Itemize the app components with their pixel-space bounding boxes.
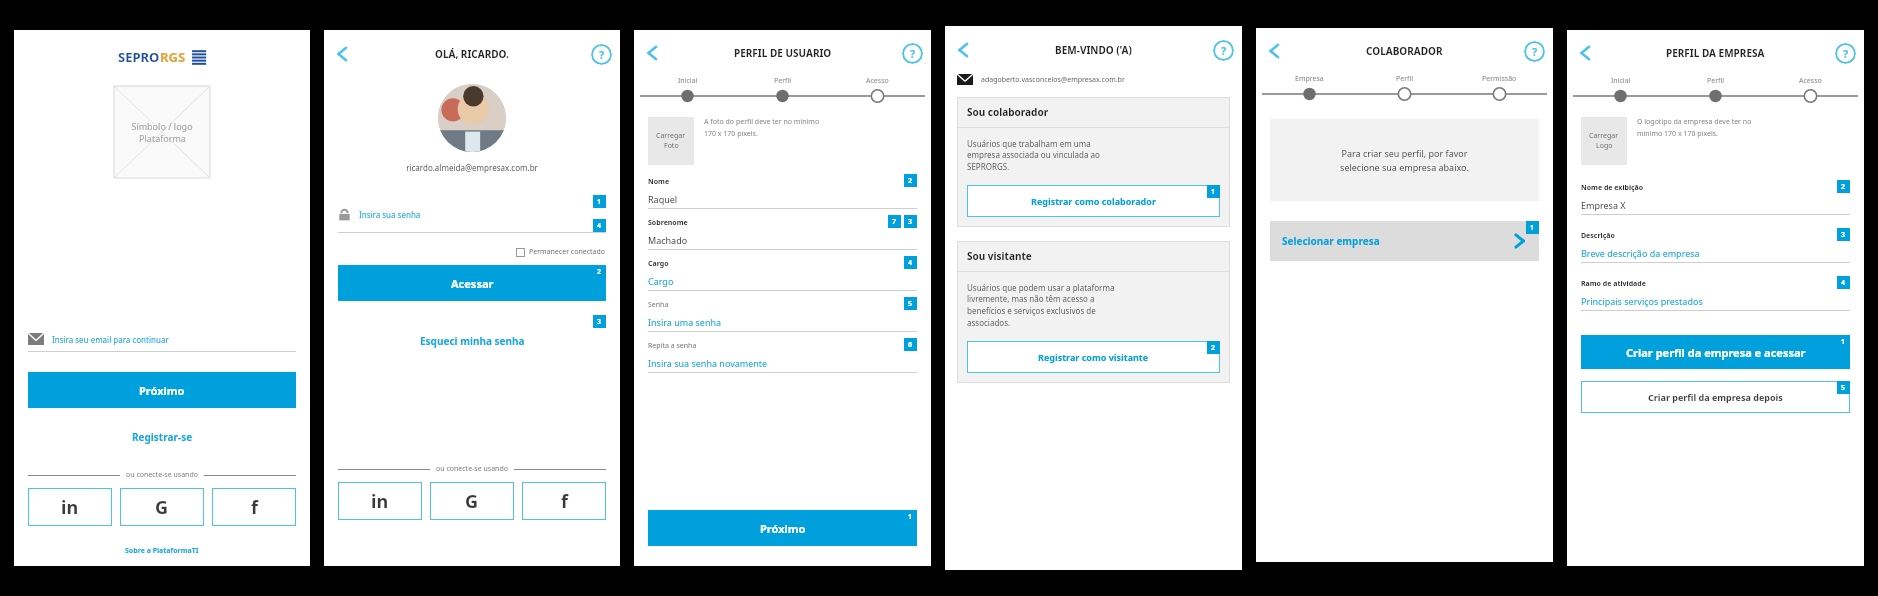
staticText: Cargo [648, 259, 669, 269]
staticText: Sou visitante [967, 249, 1032, 263]
staticText: Sou colaborador [967, 105, 1049, 119]
staticText: ou conecte-se usando [126, 470, 198, 480]
button[interactable]: Entrar com G [120, 488, 204, 526]
button[interactable]: Ajuda [591, 44, 612, 65]
staticText: Descrição [1581, 231, 1615, 241]
staticText: O logotipo da empresa deve ter no mínimo… [1637, 117, 1752, 138]
button[interactable]: Próximo [28, 372, 296, 408]
staticText: ? [910, 46, 916, 61]
staticText: 1 [1211, 187, 1216, 197]
staticText: Acessar [451, 276, 494, 291]
staticText: in [61, 495, 79, 520]
staticText: Plataforma [139, 132, 186, 144]
staticText: Perfil [1396, 74, 1414, 84]
staticText: ? [1532, 44, 1538, 59]
staticText: Inicial [678, 76, 698, 86]
staticText: ou conecte-se usando [436, 464, 508, 474]
staticText: Breve descrição da empresa [1581, 247, 1700, 259]
staticText: Criar perfil da empresa e acessar [1626, 345, 1806, 360]
staticText: ? [599, 47, 605, 62]
staticText: Próximo [760, 521, 806, 536]
staticText: Carregar [1589, 131, 1619, 141]
button[interactable]: Registrar-se [28, 430, 296, 444]
button[interactable]: Carregar [648, 117, 694, 165]
staticText: Inicial [1611, 76, 1631, 86]
staticText: Selecionar empresa [1282, 234, 1380, 248]
staticText: Usuários que trabalham em uma empresa as… [967, 138, 1100, 173]
staticText: Carregar [656, 131, 686, 141]
staticText: 3 [1841, 230, 1846, 240]
button[interactable]: Próximo [648, 510, 917, 546]
button[interactable]: Entrar com G [430, 482, 514, 520]
button[interactable]: Voltar [953, 39, 975, 61]
button[interactable]: Registrar como visitante [967, 341, 1220, 373]
staticText: Esqueci minha senha [420, 334, 525, 348]
button[interactable]: Voltar [1264, 40, 1286, 62]
button[interactable]: Criar perfil da empresa depois [1581, 381, 1850, 413]
button[interactable]: Entrar com f [522, 482, 606, 520]
staticText: G [465, 489, 479, 514]
staticText: RGS [160, 48, 186, 66]
staticText: PERFIL DA EMPRESA [1666, 46, 1765, 60]
staticText: Insira seu email para continuar [52, 334, 169, 345]
staticText: 7 [892, 217, 897, 227]
staticText: Principais serviços prestados [1581, 295, 1703, 307]
button[interactable]: Entrar com in [28, 488, 112, 526]
staticText: Logo [1596, 141, 1613, 151]
staticText: Sobre a PlataformaTI [125, 546, 199, 556]
staticText: Machado [648, 234, 688, 246]
staticText: SEPRO [118, 48, 160, 66]
button[interactable]: Acessar [338, 265, 606, 301]
button[interactable]: Voltar [1575, 42, 1597, 64]
staticText: 1 [1530, 223, 1535, 233]
staticText: Permanecer conectado [529, 247, 606, 257]
button[interactable]: Entrar com f [212, 488, 296, 526]
staticText: in [371, 489, 389, 514]
staticText: 1 [1841, 337, 1846, 347]
staticText: Usuários que podem usar a plataforma liv… [967, 282, 1115, 329]
staticText: Para criar seu perfil, por favor selecio… [1340, 147, 1469, 174]
button[interactable]: Ajuda [1213, 40, 1234, 61]
staticText: Próximo [139, 383, 185, 398]
staticText: 2 [1841, 182, 1846, 192]
button[interactable]: Entrar com in [338, 482, 422, 520]
button[interactable]: Registrar como colaborador [967, 185, 1220, 217]
staticText: 2 [1211, 343, 1216, 353]
staticText: 3 [597, 317, 602, 327]
button[interactable]: Selecionar empresa [1270, 221, 1539, 261]
staticText: Sobrenome [648, 218, 688, 228]
staticText: ? [1221, 43, 1227, 58]
staticText: 5 [908, 299, 913, 309]
staticText: Perfil [1707, 76, 1725, 86]
staticText: Foto [664, 141, 679, 151]
button[interactable]: Ajuda [902, 43, 923, 64]
button[interactable]: Voltar [332, 43, 354, 65]
staticText: Insira uma senha [648, 316, 722, 328]
staticText: Raquel [648, 193, 678, 205]
staticText: 4 [597, 221, 602, 231]
staticText: 5 [1841, 383, 1846, 393]
staticText: 2 [597, 267, 602, 277]
button[interactable]: Criar perfil da empresa e acessar [1581, 335, 1850, 369]
button[interactable]: Esqueci minha senha [338, 334, 606, 348]
button[interactable]: Carregar [1581, 117, 1627, 165]
staticText: f [561, 489, 568, 514]
staticText: Repita a senha [648, 341, 697, 351]
staticText: Perfil [774, 76, 792, 86]
button[interactable]: Ajuda [1524, 41, 1545, 62]
staticText: 2 [908, 176, 913, 186]
staticText: Insira sua senha [359, 209, 421, 220]
button[interactable]: Voltar [642, 42, 664, 64]
staticText: Acesso [866, 76, 889, 86]
button[interactable]: Ajuda [1835, 43, 1856, 64]
staticText: Registrar-se [132, 430, 193, 444]
button[interactable]: Sobre a PlataformaTI [28, 546, 296, 556]
staticText: Ramo de atividade [1581, 279, 1646, 289]
staticText: 1 [597, 197, 602, 207]
staticText: G [155, 495, 169, 520]
staticText: 1 [908, 512, 913, 522]
staticText: adagoberto.vasconcelos@empresax.com.br [981, 75, 1125, 85]
staticText: f [251, 495, 258, 520]
button[interactable]: Permanecer conectado [338, 247, 606, 257]
staticText: Acesso [1799, 76, 1822, 86]
